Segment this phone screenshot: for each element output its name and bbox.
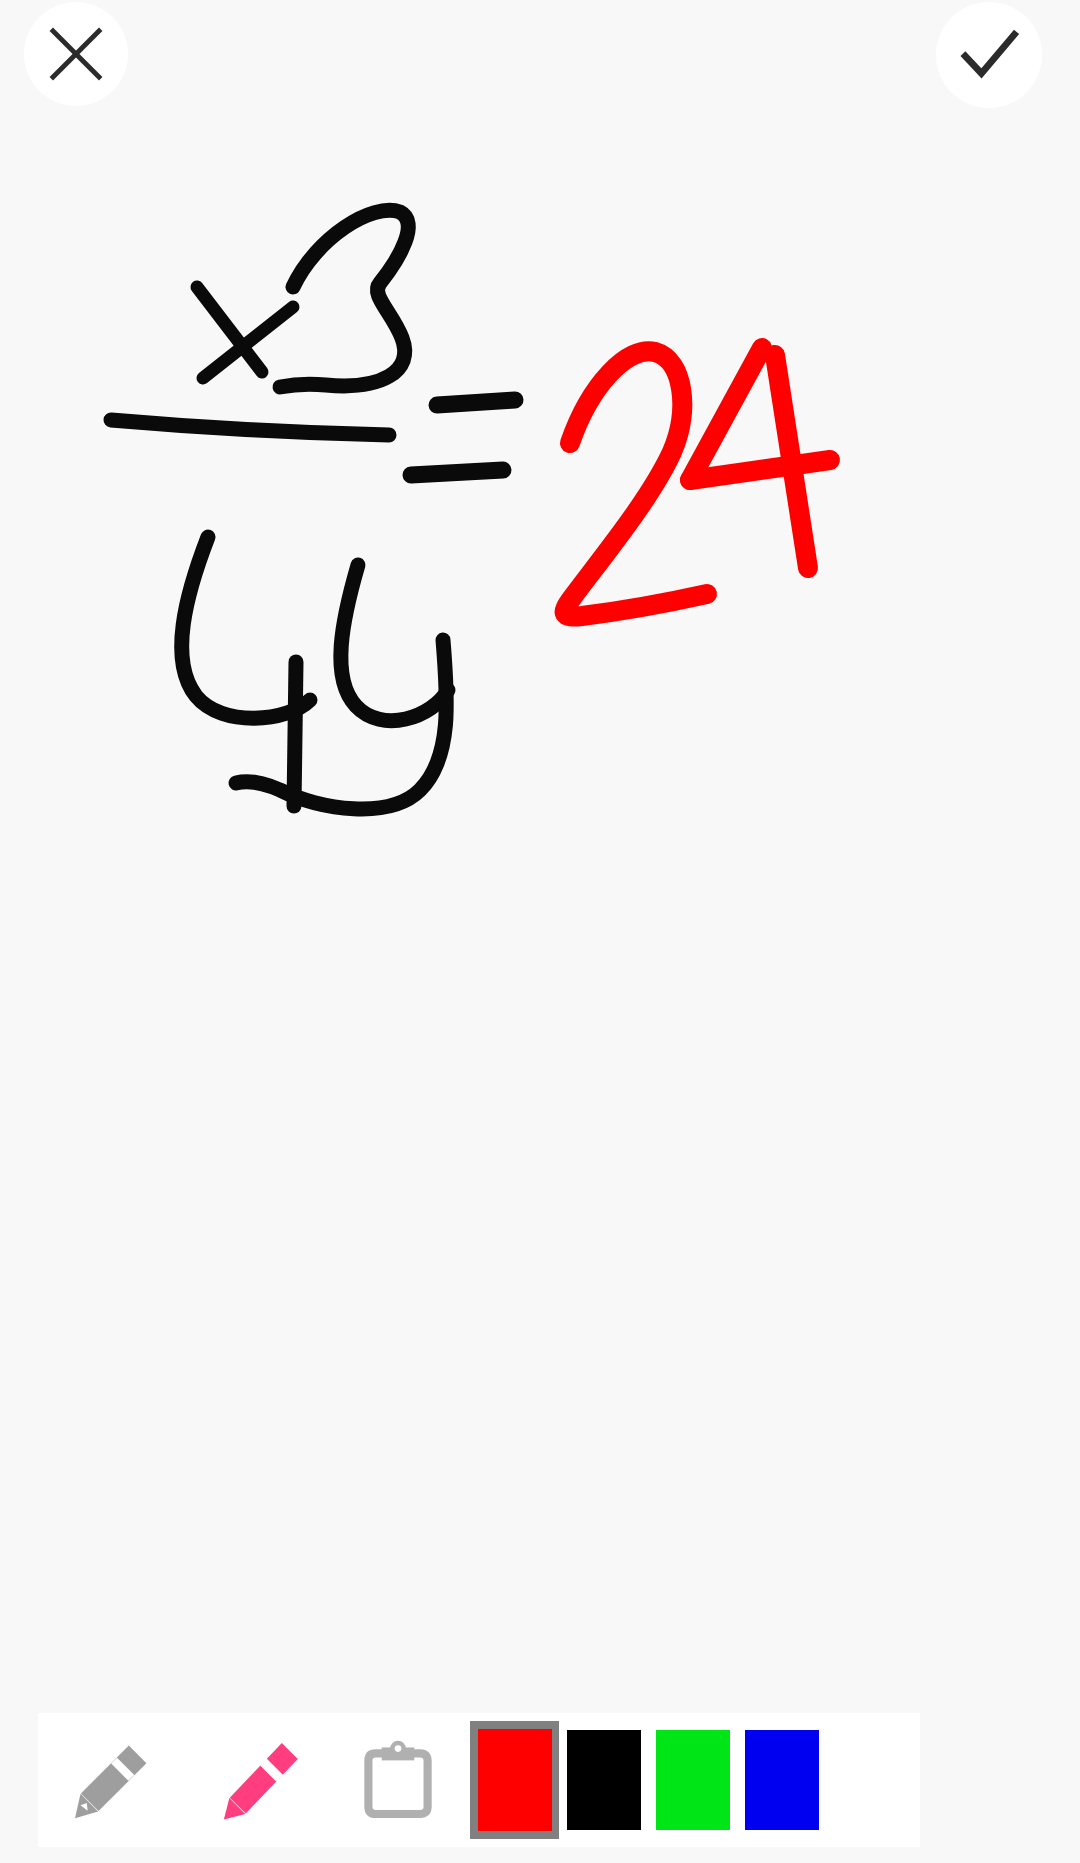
button[interactable]: Pen tool xyxy=(38,1713,186,1847)
button[interactable]: Highlighter tool xyxy=(186,1713,334,1847)
button[interactable]: Done xyxy=(936,2,1042,108)
button[interactable]: Close xyxy=(24,2,128,106)
button[interactable]: Black xyxy=(559,1713,648,1847)
button[interactable]: Green xyxy=(648,1713,737,1847)
button[interactable]: Clipboard xyxy=(334,1713,462,1847)
button[interactable]: Red xyxy=(470,1713,559,1847)
button[interactable]: Blue xyxy=(737,1713,826,1847)
